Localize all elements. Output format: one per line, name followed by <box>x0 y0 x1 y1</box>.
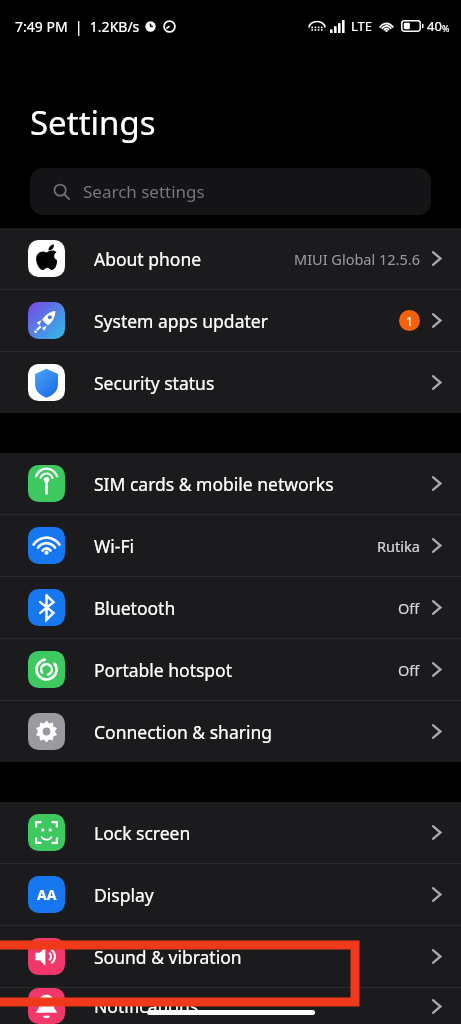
staticText: System apps updater <box>94 309 399 333</box>
staticText: Display <box>94 883 431 907</box>
staticText: 1 <box>406 313 413 329</box>
button[interactable]: Connection & sharing <box>0 701 461 762</box>
staticText: AA <box>37 885 57 904</box>
button[interactable]: SIM cards & mobile networks <box>0 453 461 514</box>
staticText: Security status <box>94 371 431 395</box>
staticText: LTE <box>351 17 373 35</box>
button[interactable]: Sound & vibration <box>0 926 461 987</box>
staticText: 7:49 PM | 1.2KB/s <box>15 17 140 36</box>
staticText: SIM cards & mobile networks <box>94 472 431 496</box>
staticText: Wi-Fi <box>94 534 377 558</box>
staticText: Off <box>398 660 420 680</box>
staticText: Rutika <box>377 536 420 556</box>
button[interactable]: AA <box>0 864 461 925</box>
staticText: MIUI Global 12.5.6 <box>294 249 420 269</box>
staticText: 40 <box>427 17 442 35</box>
staticText: Sound & vibration <box>94 945 431 969</box>
button[interactable]: Lock screen <box>0 802 461 863</box>
staticText: Portable hotspot <box>94 658 398 682</box>
button[interactable]: Portable hotspot <box>0 639 461 700</box>
button[interactable]: Security status <box>0 352 461 413</box>
staticText: Settings <box>30 100 156 145</box>
staticText: About phone <box>94 247 294 271</box>
staticText: Lock screen <box>94 821 431 845</box>
button[interactable]: Wi-Fi <box>0 515 461 576</box>
button[interactable]: Bluetooth <box>0 577 461 638</box>
button[interactable]: About phone <box>0 228 461 289</box>
staticText: Off <box>398 598 420 618</box>
button[interactable]: Notifications <box>0 988 461 1024</box>
button[interactable]: Search settings <box>30 168 431 215</box>
staticText: Search settings <box>83 180 205 203</box>
staticText: % <box>442 22 450 34</box>
staticText: Connection & sharing <box>94 720 431 744</box>
staticText: Notifications <box>94 994 431 1018</box>
staticText: Bluetooth <box>94 596 398 620</box>
button[interactable]: System apps updater <box>0 290 461 351</box>
